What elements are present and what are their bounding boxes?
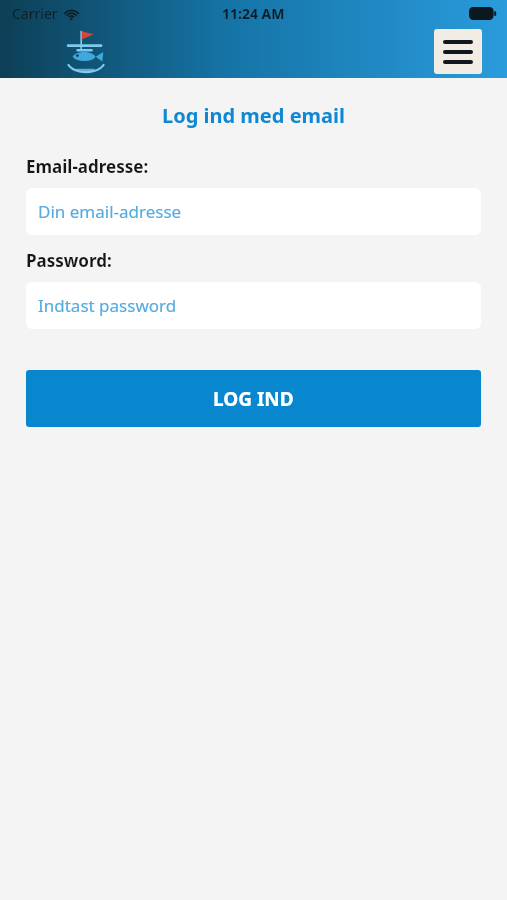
button[interactable]: Din email-adresse [26, 188, 481, 235]
staticText: LOG IND [213, 386, 294, 412]
button[interactable]: Indtast password [26, 282, 481, 329]
staticText: Password: [26, 249, 112, 272]
staticText: Din email-adresse [38, 200, 182, 223]
button[interactable]: Menu [434, 29, 482, 74]
staticText: Carrier [12, 4, 58, 23]
button[interactable]: LOG IND [26, 370, 481, 427]
staticText: Email-adresse: [26, 155, 149, 178]
staticText: Indtast password [38, 294, 177, 317]
staticText: 11:24 AM [222, 4, 285, 23]
staticText: Log ind med email [0, 102, 507, 129]
